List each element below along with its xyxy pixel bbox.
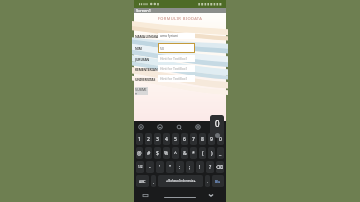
button[interactable]: Keyboard tool 3 — [176, 124, 182, 130]
staticText: Hint for TextBox1 — [160, 66, 188, 71]
staticText: ^ — [174, 150, 177, 157]
button[interactable]: ' — [156, 161, 164, 173]
button[interactable]: ◂ Bahasa Indonesia ▸ — [158, 175, 203, 187]
staticText: ⌫ — [216, 164, 224, 170]
staticText: % — [164, 150, 169, 157]
button[interactable]: _ — [217, 147, 224, 159]
button[interactable]: Blu — [212, 175, 224, 187]
staticText: UNIVERSITAS — [135, 77, 156, 81]
button[interactable]: Hide keyboard — [208, 192, 214, 198]
staticText: NIM — [135, 46, 142, 50]
staticText: * — [192, 150, 195, 157]
button[interactable]: ) — [208, 147, 215, 159]
staticText: 4 — [165, 136, 168, 143]
staticText: 3 — [156, 136, 159, 143]
staticText: Hint for TextBox1 — [160, 56, 188, 61]
button[interactable]: 6 — [181, 133, 188, 145]
staticText: _ — [219, 150, 222, 157]
staticText: @ — [137, 150, 142, 157]
button[interactable]: " — [166, 161, 174, 173]
button[interactable]: 1/2 — [136, 161, 144, 173]
staticText: & — [183, 150, 187, 157]
staticText: : — [179, 164, 181, 171]
button[interactable]: : — [176, 161, 184, 173]
staticText: - — [149, 164, 151, 171]
staticText: ama fyriani sholandari — [160, 33, 195, 39]
staticText: NAMA LENGKAP — [135, 34, 159, 38]
button[interactable]: 0 — [217, 133, 224, 145]
button[interactable]: 50 — [158, 43, 195, 53]
staticText: ) — [211, 150, 213, 157]
button[interactable]: Switch keyboard — [143, 193, 148, 198]
button[interactable]: $ — [154, 147, 161, 159]
button[interactable]: ? — [206, 161, 214, 173]
button[interactable]: 1 — [136, 133, 143, 145]
staticText: ◂ Bahasa Indonesia ▸ — [166, 179, 196, 183]
staticText: ABC — [139, 179, 146, 184]
button[interactable]: 5 — [172, 133, 179, 145]
staticText: JURUSAN — [135, 57, 150, 61]
button[interactable]: ⌫ — [216, 161, 224, 173]
button[interactable]: & — [181, 147, 188, 159]
staticText: ! — [199, 164, 201, 171]
button[interactable]: . — [205, 175, 210, 187]
button[interactable]: , — [151, 175, 156, 187]
button[interactable]: SUBMIT — [135, 87, 148, 95]
staticText: 1 — [138, 136, 141, 143]
button[interactable]: ama fyriani sholandari — [158, 33, 195, 39]
button[interactable]: 8 — [199, 133, 206, 145]
staticText: " — [169, 164, 172, 171]
button[interactable]: @ — [136, 147, 143, 159]
button[interactable]: ! — [196, 161, 204, 173]
staticText: ? — [209, 164, 212, 171]
staticText: 6 — [183, 136, 186, 143]
staticText: FORMULIR BIODATA — [134, 16, 226, 21]
button[interactable]: ^ — [172, 147, 179, 159]
button[interactable]: - — [146, 161, 154, 173]
staticText: . — [207, 179, 208, 184]
staticText: , — [153, 179, 154, 184]
staticText: # — [147, 150, 151, 157]
staticText: SUBMIT — [135, 87, 148, 95]
button[interactable]: Hint for TextBox1 — [158, 65, 195, 72]
button[interactable]: 7 — [190, 133, 197, 145]
button[interactable]: 3 — [154, 133, 161, 145]
button[interactable]: Hint for TextBox1 — [158, 55, 195, 62]
staticText: ( — [202, 150, 204, 157]
staticText: 0 — [219, 136, 222, 143]
staticText: 5 — [174, 136, 177, 143]
staticText: ' — [159, 164, 161, 171]
staticText: 1/2 — [138, 165, 143, 169]
button[interactable]: Keyboard tool 4 — [195, 124, 201, 130]
button[interactable]: % — [163, 147, 170, 159]
staticText: 0 — [215, 118, 220, 129]
button[interactable]: Hint for TextBox1 — [158, 75, 195, 82]
button[interactable]: Keyboard tool 2 — [157, 124, 163, 130]
button[interactable]: # — [145, 147, 152, 159]
staticText: Hint for TextBox1 — [160, 76, 188, 81]
button[interactable]: * — [190, 147, 197, 159]
staticText: 50 — [160, 46, 164, 51]
button[interactable]: 9 — [208, 133, 215, 145]
button[interactable]: ABC — [136, 175, 149, 187]
staticText: KEMENTERIAN — [135, 67, 158, 71]
staticText: Screen1 — [136, 8, 151, 13]
staticText: 8 — [201, 136, 204, 143]
staticText: Blu — [215, 179, 221, 184]
staticText: 9 — [210, 136, 213, 143]
staticText: 7 — [192, 136, 195, 143]
staticText: 2 — [147, 136, 150, 143]
button[interactable]: 4 — [163, 133, 170, 145]
button[interactable]: ( — [199, 147, 206, 159]
button[interactable]: ; — [186, 161, 194, 173]
button[interactable]: 2 — [145, 133, 152, 145]
button[interactable]: Keyboard tool 1 — [138, 124, 144, 130]
staticText: ; — [189, 164, 191, 171]
staticText: $ — [156, 150, 159, 157]
